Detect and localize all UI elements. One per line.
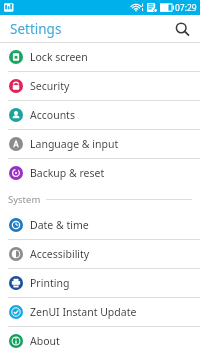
staticText: Accessibility (30, 247, 90, 261)
staticText: ZenUI Instant Update (30, 305, 137, 319)
button[interactable]: Date & time (0, 211, 200, 239)
button[interactable]: Accounts (0, 101, 200, 129)
staticText: Security (30, 79, 70, 93)
button[interactable]: Lock screen (0, 43, 200, 71)
button[interactable]: Security (0, 72, 200, 100)
button[interactable]: About (0, 327, 200, 355)
button[interactable]: Search (170, 17, 194, 41)
staticText: Printing (30, 276, 70, 290)
staticText: Settings (10, 20, 62, 38)
button[interactable]: Printing (0, 269, 200, 297)
staticText: Lock screen (30, 50, 88, 64)
button[interactable]: Accessibility (0, 240, 200, 268)
staticText: Language & input (30, 137, 119, 151)
staticText: 07:29 (175, 2, 197, 14)
staticText: System (8, 193, 41, 206)
button[interactable]: Language & input (0, 130, 200, 158)
button[interactable]: ZenUI Instant Update (0, 298, 200, 326)
staticText: Accounts (30, 108, 75, 122)
staticText: Backup & reset (30, 166, 105, 180)
staticText: Date & time (30, 218, 89, 232)
staticText: About (30, 334, 60, 348)
button[interactable]: Backup & reset (0, 159, 200, 187)
